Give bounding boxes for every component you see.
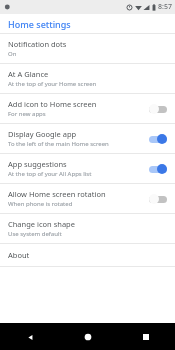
button[interactable]: Home [79,328,97,346]
button[interactable]: At A Glance [0,64,175,93]
staticText: At the top of your Home screen [8,80,97,88]
staticText: Display Google app [8,129,77,139]
button[interactable]: Notification dots [0,34,175,63]
button[interactable]: Allow Home screen rotation [0,184,175,213]
button[interactable]: About [0,244,175,266]
staticText: When phone is rotated [8,200,73,208]
staticText: Change icon shape [8,219,75,229]
button[interactable]: Change icon shape [0,214,175,243]
button[interactable]: Back [21,328,39,346]
staticText: Add icon to Home screen [8,99,97,109]
staticText: Use system default [8,230,62,238]
button[interactable]: Setting enabled [147,132,169,146]
staticText: Notification dots [8,39,67,49]
button[interactable]: Recent apps [137,328,155,346]
staticText: Allow Home screen rotation [8,189,106,199]
staticText: About [8,250,30,260]
button[interactable]: Setting enabled [147,162,169,176]
staticText: At the top of your All Apps list [8,170,92,178]
button[interactable]: App suggestions [0,154,175,183]
staticText: At A Glance [8,69,49,79]
staticText: Home settings [8,18,71,30]
staticText: 8:57 [158,2,172,12]
button[interactable]: Setting disabled [147,102,169,116]
staticText: For new apps [8,110,46,118]
staticText: App suggestions [8,159,67,169]
button[interactable]: Setting disabled [147,192,169,206]
staticText: To the left of the main Home screen [8,140,109,148]
button[interactable]: Add icon to Home screen [0,94,175,123]
button[interactable]: Display Google app [0,124,175,153]
staticText: On [8,50,17,58]
